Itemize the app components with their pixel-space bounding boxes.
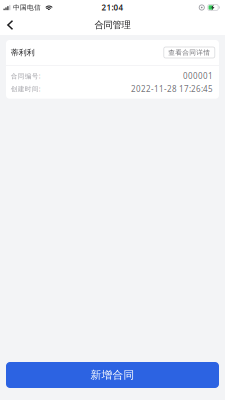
staticText: 创建时间:	[11, 84, 41, 93]
staticText: 合同编号:	[11, 72, 41, 80]
staticText: 蒂利利	[11, 48, 35, 57]
staticText: 合同管理	[94, 19, 130, 31]
button[interactable]: Back	[0, 15, 27, 35]
button[interactable]: 查看合同详情	[164, 47, 215, 58]
staticText: 新增合同	[90, 368, 134, 381]
staticText: 查看合同详情	[168, 48, 210, 57]
staticText: 000001	[183, 71, 213, 81]
staticText: 中国电信	[13, 3, 41, 12]
button[interactable]: 新增合同	[6, 362, 219, 388]
staticText: 2022-11-28 17:26:45	[131, 83, 213, 94]
staticText: 21:04	[101, 2, 123, 13]
